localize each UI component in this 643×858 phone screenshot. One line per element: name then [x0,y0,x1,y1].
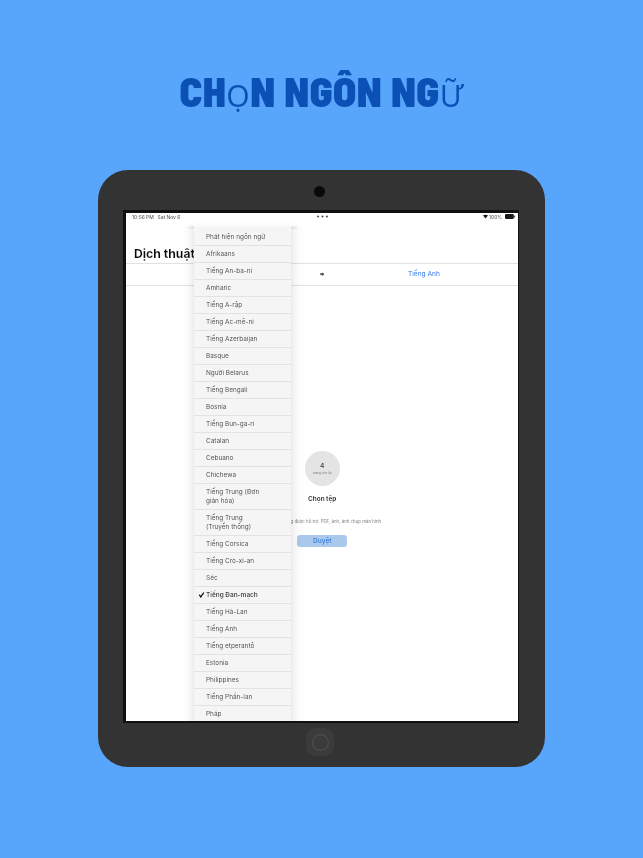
button[interactable]: Home [306,728,334,756]
button[interactable]: Tiếng A-rập [194,297,291,313]
staticText: Chọn tệp [308,495,337,503]
staticText: 100% [489,214,503,220]
button[interactable]: Pháp [194,706,291,721]
staticText: 4 [320,462,325,470]
staticText: Tiếng Đan-mạch [206,591,258,599]
button[interactable]: Tiếng Anh [408,270,440,278]
staticText: Các định dạng được hỗ trợ: PDF, ảnh, ảnh… [263,519,382,524]
staticText: Philippines [206,676,239,684]
staticText: Tiếng Azerbaijan [206,335,258,343]
button[interactable]: Philippines [194,672,291,688]
staticText: Tiếng A-rập [206,301,243,309]
button[interactable]: Cebuano [194,450,291,466]
button[interactable]: Tiếng Trung (Đơn giản hóa) [194,484,291,509]
button[interactable]: Tiếng Bun-ga-ri [194,416,291,432]
button[interactable]: Chichewa [194,467,291,483]
button[interactable]: Tiếng Đan-mạch [194,587,291,603]
button[interactable]: Tiếng Hà-Lan [194,604,291,620]
staticText: Tiếng Hà-Lan [206,608,248,616]
staticText: Tiếng Cro-xi-an [206,557,255,565]
staticText: Tiếng Anh [408,270,440,278]
staticText: Tiếng etperantô [206,642,255,650]
staticText: Afrikaans [206,250,235,258]
button[interactable]: Afrikaans [194,246,291,262]
button[interactable]: More options [317,215,328,218]
staticText: trang còn lại [313,471,332,475]
staticText: Bosnia [206,403,227,411]
button[interactable]: Estonia [194,655,291,671]
button[interactable]: Catalan [194,433,291,449]
button[interactable]: Bosnia [194,399,291,415]
staticText: Chichewa [206,471,237,479]
button[interactable]: Tiếng etperantô [194,638,291,654]
staticText: Người Belarus [206,369,249,377]
button[interactable]: Swap languages [317,270,326,279]
button[interactable]: Duyệt [297,535,347,547]
staticText: Basque [206,352,229,360]
staticText: Tiếng Bun-ga-ri [206,420,255,428]
button[interactable]: Tiếng Trung (Truyền thống) [194,510,291,535]
button[interactable]: Tiếng Anh [194,621,291,637]
button[interactable]: Basque [194,348,291,364]
button[interactable]: Tiếng Phần-lan [194,689,291,705]
staticText: Phát hiện ngôn ngữ [206,233,266,241]
button[interactable]: Tiếng Azerbaijan [194,331,291,347]
button[interactable]: Amharic [194,280,291,296]
button[interactable]: Người Belarus [194,365,291,381]
staticText: Amharic [206,284,232,292]
staticText: Catalan [206,437,230,445]
staticText: Tiếng Trung (Đơn giản hóa) [206,488,260,505]
staticText: Duyệt [313,537,332,545]
button[interactable]: Tiếng Bengali [194,382,291,398]
staticText: Tiếng Anh [206,625,238,633]
staticText: Pháp [206,710,222,718]
button[interactable]: Tiếng Cro-xi-an [194,553,291,569]
button[interactable]: Tiếng An-ba-ni [194,263,291,279]
staticText: Tiếng An-ba-ni [206,267,253,275]
staticText: 10:56 PM Sat Nov 6 [132,214,181,220]
staticText: Cebuano [206,454,234,462]
button[interactable]: Tiếng Corsica [194,536,291,552]
staticText: CHỌN NGÔN NGỮ [0,65,643,116]
staticText: Dịch thuật [134,246,195,261]
button[interactable]: 4 trang còn lại [305,451,340,486]
staticText: Séc [206,574,218,582]
button[interactable]: Tiếng Ac-mê-ni [194,314,291,330]
staticText: Tiếng Phần-lan [206,693,253,701]
button[interactable]: Séc [194,570,291,586]
staticText: Estonia [206,659,229,667]
button[interactable]: Phát hiện ngôn ngữ [194,229,291,245]
staticText: Tiếng Ac-mê-ni [206,318,254,326]
button[interactable]: Chọn tệp [308,495,337,503]
staticText: Tiếng Trung (Truyền thống) [206,514,252,531]
staticText: Tiếng Corsica [206,540,249,548]
staticText: Tiếng Bengali [206,386,248,394]
